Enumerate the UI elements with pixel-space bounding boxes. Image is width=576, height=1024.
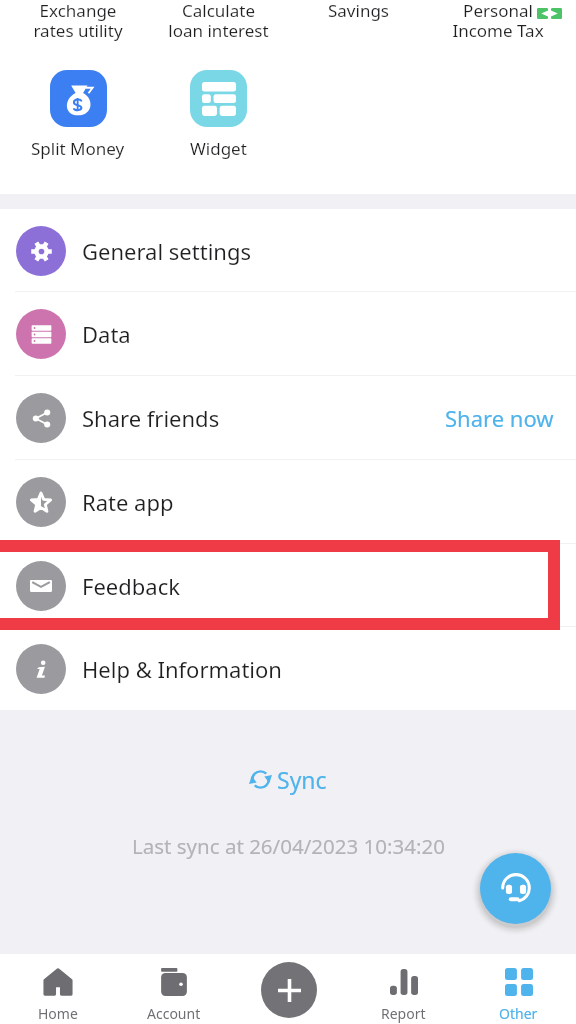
staticText: General settings xyxy=(82,236,251,266)
button[interactable]: General settings xyxy=(0,209,576,292)
staticText: Report xyxy=(381,1004,426,1023)
button[interactable]: Calculate loan interest xyxy=(148,0,288,69)
other: Exit fullscreen xyxy=(537,8,562,19)
staticText: Split Money xyxy=(31,137,125,160)
button[interactable]: Customer support xyxy=(480,853,551,924)
staticText: Account xyxy=(147,1004,201,1023)
button[interactable]: Data xyxy=(0,292,576,376)
staticText: Rate app xyxy=(82,487,174,517)
button[interactable]: Share friends xyxy=(0,376,576,460)
staticText: Data xyxy=(82,319,131,349)
staticText: Sync xyxy=(277,764,327,795)
button[interactable]: Report xyxy=(346,954,461,1024)
button[interactable]: Home xyxy=(0,954,116,1024)
button[interactable]: Feedback xyxy=(0,544,576,627)
staticText: Last sync at 26/04/2023 10:34:20 xyxy=(132,832,445,860)
staticText: Personal Income Tax xyxy=(452,0,544,42)
button[interactable]: Help & Information xyxy=(0,627,576,710)
button[interactable]: Add transaction xyxy=(261,962,317,1018)
button[interactable]: Widget xyxy=(148,70,288,160)
button[interactable]: Split Money xyxy=(8,70,148,160)
staticText: Exchange rates utility xyxy=(33,0,123,42)
button[interactable]: Rate app xyxy=(0,460,576,544)
staticText: Home xyxy=(38,1004,78,1023)
button[interactable]: Savings xyxy=(288,0,428,69)
staticText: Share now xyxy=(445,403,554,433)
button[interactable]: Personal Income Tax xyxy=(428,0,568,69)
staticText: Help & Information xyxy=(82,654,282,684)
staticText: Widget xyxy=(190,137,247,160)
staticText: Calculate loan interest xyxy=(168,0,269,42)
staticText: Feedback xyxy=(82,571,180,601)
button[interactable]: Other xyxy=(461,954,576,1024)
staticText: Share friends xyxy=(82,403,220,433)
staticText: Other xyxy=(499,1004,538,1023)
button[interactable]: Account xyxy=(116,954,231,1024)
staticText: Savings xyxy=(328,0,389,22)
button[interactable]: Sync xyxy=(239,761,337,798)
button[interactable]: Exchange rates utility xyxy=(8,0,148,69)
